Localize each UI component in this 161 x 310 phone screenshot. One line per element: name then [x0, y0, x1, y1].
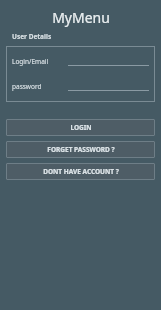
- staticText: FORGET PASSWORD ?: [47, 145, 115, 154]
- staticText: Login/Email: [12, 57, 49, 66]
- button[interactable]: DONT HAVE ACCOUNT ?: [6, 163, 155, 180]
- button[interactable]: LOGIN: [6, 119, 155, 136]
- button[interactable]: [68, 83, 149, 91]
- staticText: DONT HAVE ACCOUNT ?: [43, 167, 119, 176]
- button[interactable]: FORGET PASSWORD ?: [6, 141, 155, 158]
- staticText: password: [12, 82, 42, 91]
- staticText: LOGIN: [70, 123, 92, 132]
- button[interactable]: [68, 58, 149, 66]
- staticText: User Details: [12, 32, 52, 41]
- staticText: MyMenu: [52, 8, 110, 27]
